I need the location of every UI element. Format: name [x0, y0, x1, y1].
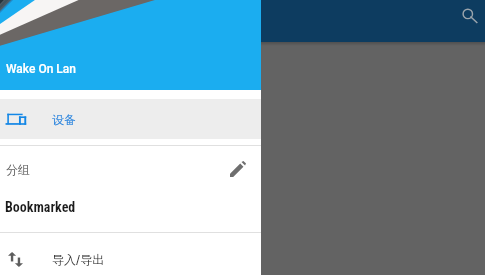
staticText: Bookmarked [5, 199, 76, 215]
staticText: 导入/导出 [52, 252, 105, 267]
button[interactable]: 导入/导出 [0, 238, 261, 275]
staticText: 分组 [6, 162, 30, 177]
staticText: Wake On Lan [6, 62, 76, 76]
button[interactable]: 分组 [0, 146, 261, 192]
button[interactable]: Edit groups [226, 157, 250, 181]
button[interactable]: 设备 [0, 99, 261, 139]
button[interactable]: Bookmarked [0, 187, 261, 227]
staticText: 设备 [52, 112, 76, 127]
button[interactable]: Search [454, 0, 485, 34]
